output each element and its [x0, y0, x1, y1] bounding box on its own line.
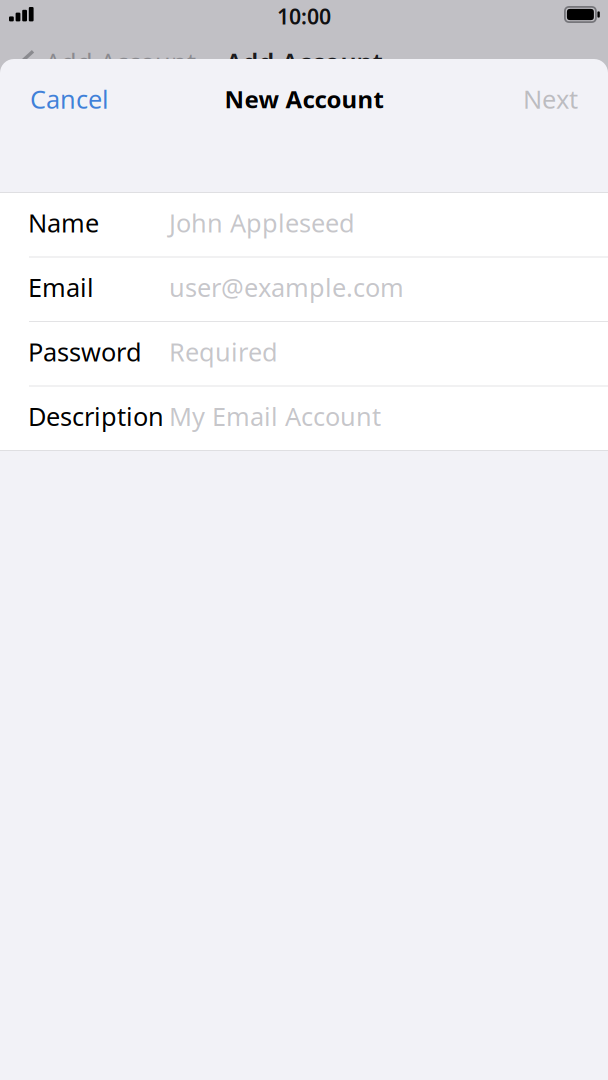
staticText: user@example.com — [169, 270, 404, 304]
staticText: Password — [28, 335, 142, 368]
staticText: Add Account — [225, 45, 382, 79]
staticText: Name — [28, 206, 99, 239]
staticText: Cancel — [30, 82, 109, 116]
staticText: My Email Account — [169, 399, 381, 433]
staticText: Required — [169, 335, 278, 368]
button[interactable]: Cancel — [26, 72, 113, 126]
staticText: Next — [523, 82, 578, 116]
button[interactable]: Email — [0, 257, 608, 321]
button[interactable]: Description — [0, 386, 608, 450]
button[interactable]: Name — [0, 193, 608, 256]
staticText: Description — [28, 399, 164, 433]
button[interactable]: Next — [519, 72, 582, 126]
staticText: New Account — [224, 83, 383, 115]
staticText: Email — [28, 270, 94, 304]
staticText: John Appleseed — [169, 206, 355, 239]
staticText: 10:00 — [277, 2, 331, 30]
staticText: Add Account — [45, 45, 196, 79]
button[interactable]: Back to Add Account — [19, 36, 196, 88]
button[interactable]: Password — [0, 322, 608, 385]
